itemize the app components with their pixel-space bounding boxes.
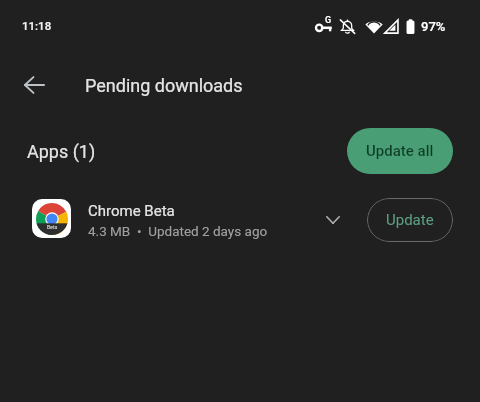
staticText: 4.3 MB • Updated 2 days ago <box>88 223 268 239</box>
staticText: 11:18 <box>22 19 52 32</box>
staticText: 97% <box>421 19 446 34</box>
button[interactable]: Update all <box>347 128 453 174</box>
staticText: Beta <box>47 224 58 230</box>
button[interactable]: Update <box>367 198 453 242</box>
staticText: Chrome Beta <box>88 202 175 220</box>
staticText: Update <box>386 211 434 229</box>
button[interactable]: Navigate up <box>10 61 58 109</box>
staticText: Pending downloads <box>85 75 243 96</box>
staticText: G <box>325 15 332 26</box>
staticText: Update all <box>366 142 434 160</box>
button[interactable]: Beta <box>0 190 480 250</box>
button[interactable]: Expand <box>313 200 353 240</box>
staticText: Apps (1) <box>27 141 96 162</box>
